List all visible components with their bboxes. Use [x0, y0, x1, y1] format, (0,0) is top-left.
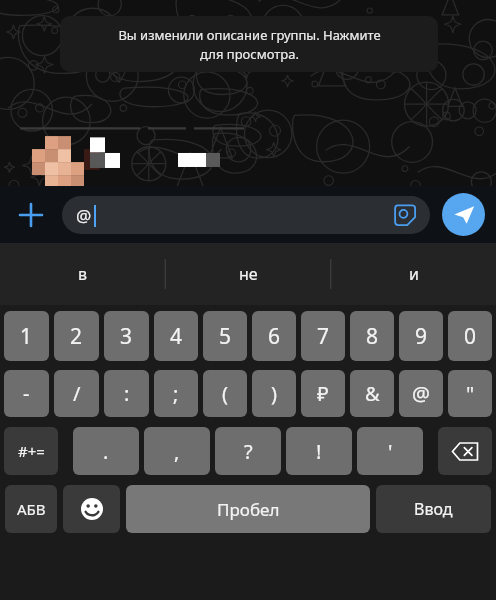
button[interactable]: Attach [7, 191, 55, 239]
staticText: 8 [366, 322, 379, 351]
staticText: 4 [170, 322, 183, 351]
button[interactable]: ₽ [301, 370, 345, 417]
button[interactable]: 2 [54, 311, 99, 361]
button[interactable]: ( [203, 370, 247, 417]
staticText: АБВ [17, 499, 46, 519]
staticText: " [466, 380, 475, 407]
button[interactable]: @ [399, 370, 443, 417]
staticText: #+= [18, 441, 45, 461]
staticText: не [239, 263, 258, 285]
button[interactable]: 4 [154, 311, 198, 361]
staticText: ? [244, 438, 253, 465]
staticText: Пробел [217, 498, 280, 521]
button[interactable]: 7 [301, 311, 345, 361]
button[interactable]: Send [442, 193, 485, 236]
staticText: - [23, 380, 30, 407]
button[interactable]: ? [215, 427, 281, 475]
button[interactable]: 1 [4, 311, 49, 361]
staticText: ; [173, 380, 179, 407]
button[interactable]: , [144, 427, 210, 475]
button[interactable]: @ [62, 196, 430, 234]
button[interactable]: не [166, 243, 331, 305]
button[interactable]: 3 [104, 311, 149, 361]
staticText: @ [412, 380, 430, 407]
button[interactable]: ! [286, 427, 352, 475]
button[interactable]: Emoji [63, 485, 120, 533]
staticText: Ввод [414, 498, 453, 520]
button[interactable]: АБВ [5, 485, 57, 533]
button[interactable]: " [448, 370, 492, 417]
staticText: . [103, 438, 109, 465]
button[interactable]: ) [252, 370, 296, 417]
staticText: 1 [20, 322, 33, 351]
button[interactable]: Пробел [126, 485, 370, 533]
button[interactable]: Ввод [376, 485, 491, 533]
button[interactable]: 9 [399, 311, 443, 361]
button[interactable]: - [4, 370, 49, 417]
button[interactable]: в [0, 243, 166, 305]
button[interactable]: : [104, 370, 149, 417]
button[interactable]: / [54, 370, 99, 417]
button[interactable]: . [73, 427, 139, 475]
staticText: ! [316, 438, 322, 465]
staticText: 0 [464, 322, 477, 351]
staticText: @ [76, 204, 92, 227]
button[interactable]: Stickers [390, 200, 420, 230]
button[interactable]: ; [154, 370, 198, 417]
staticText: ₽ [317, 380, 329, 407]
staticText: 6 [268, 322, 281, 351]
staticText: 5 [219, 322, 232, 351]
staticText: 9 [415, 322, 428, 351]
staticText: , [174, 438, 180, 465]
staticText: Вы изменили описание группы. Нажмите для… [118, 26, 381, 63]
button[interactable]: 8 [350, 311, 394, 361]
staticText: и [409, 263, 419, 285]
button[interactable]: & [350, 370, 394, 417]
staticText: 7 [317, 322, 330, 351]
button[interactable]: 0 [448, 311, 492, 361]
button[interactable]: 5 [203, 311, 247, 361]
staticText: ' [388, 438, 393, 465]
button[interactable]: ' [357, 427, 423, 475]
staticText: : [124, 380, 130, 407]
button[interactable]: и [331, 243, 496, 305]
button[interactable]: #+= [4, 427, 58, 475]
staticText: ) [271, 380, 277, 407]
staticText: / [73, 380, 81, 407]
button[interactable]: Вы изменили описание группы. Нажмите для… [60, 16, 438, 72]
staticText: в [78, 263, 88, 285]
staticText: & [365, 380, 380, 407]
staticText: 2 [70, 322, 83, 351]
staticText: 3 [120, 322, 133, 351]
staticText: ( [222, 380, 228, 407]
button[interactable]: 6 [252, 311, 296, 361]
button[interactable]: Backspace [438, 427, 492, 475]
